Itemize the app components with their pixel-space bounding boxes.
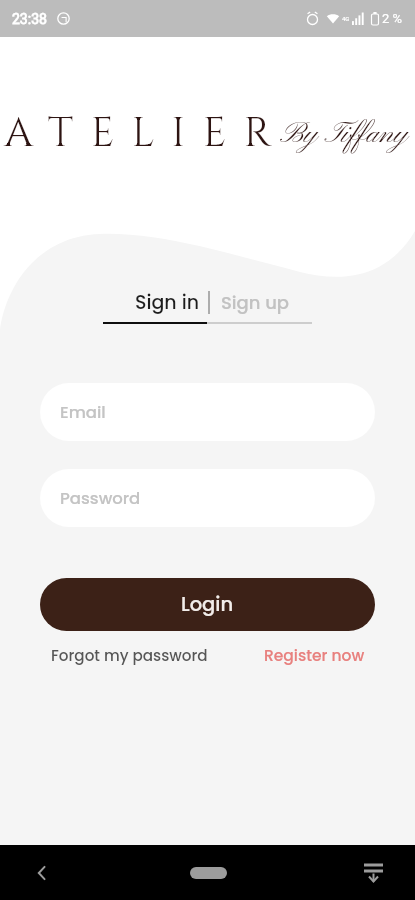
- button[interactable]: Register now: [264, 645, 365, 667]
- button[interactable]: Login: [40, 578, 375, 631]
- button[interactable]: Back: [14, 845, 70, 900]
- staticText: Sign in: [135, 289, 199, 316]
- staticText: Register now: [264, 645, 365, 667]
- staticText: Forgot my password: [51, 645, 208, 666]
- staticText: 2 %: [382, 11, 403, 26]
- staticText: Email: [60, 401, 106, 424]
- staticText: By Tiffany: [280, 116, 408, 153]
- staticText: ATELIER: [4, 106, 289, 161]
- button[interactable]: Sign in: [135, 288, 208, 316]
- staticText: Sign up: [221, 290, 290, 315]
- staticText: 23:38: [12, 11, 47, 27]
- staticText: Login: [181, 591, 234, 618]
- button[interactable]: Email: [40, 383, 375, 441]
- button[interactable]: Home: [180, 845, 236, 900]
- button[interactable]: Password: [40, 469, 375, 527]
- button[interactable]: Forgot my password: [51, 645, 208, 666]
- staticText: 4G: [342, 15, 350, 22]
- button[interactable]: Download: [345, 845, 401, 900]
- staticText: Password: [60, 487, 141, 510]
- button[interactable]: Sign up: [210, 288, 290, 316]
